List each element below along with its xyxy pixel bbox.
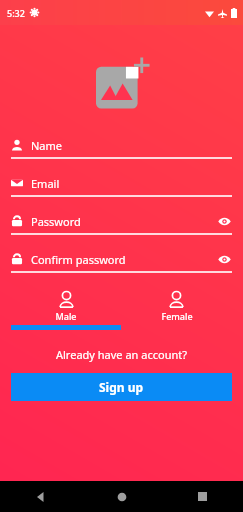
staticText: Sign up	[99, 379, 144, 395]
button[interactable]: Confirm password	[11, 247, 232, 273]
button[interactable]: Show password	[216, 251, 232, 267]
staticText: Password	[31, 214, 216, 229]
button[interactable]: Email	[11, 171, 232, 197]
staticText: Female	[161, 310, 193, 322]
staticText: Already have an account?	[56, 347, 187, 362]
button[interactable]: Password	[11, 209, 232, 235]
button[interactable]: Male	[11, 291, 121, 322]
button[interactable]: Add photo	[93, 55, 151, 113]
staticText: Email	[31, 176, 232, 191]
staticText: Confirm password	[31, 252, 216, 267]
button[interactable]: Already have an account?	[0, 347, 243, 362]
button[interactable]: Sign up	[11, 373, 232, 401]
button[interactable]: Name	[11, 133, 232, 159]
button[interactable]: Female	[121, 291, 232, 322]
button[interactable]: Show password	[216, 213, 232, 229]
staticText: Male	[55, 310, 77, 322]
button[interactable]: Home	[81, 481, 162, 512]
button[interactable]: Recents	[162, 481, 243, 512]
button[interactable]: Back	[0, 481, 81, 512]
staticText: 5:32	[7, 7, 25, 19]
staticText: Name	[31, 138, 232, 153]
